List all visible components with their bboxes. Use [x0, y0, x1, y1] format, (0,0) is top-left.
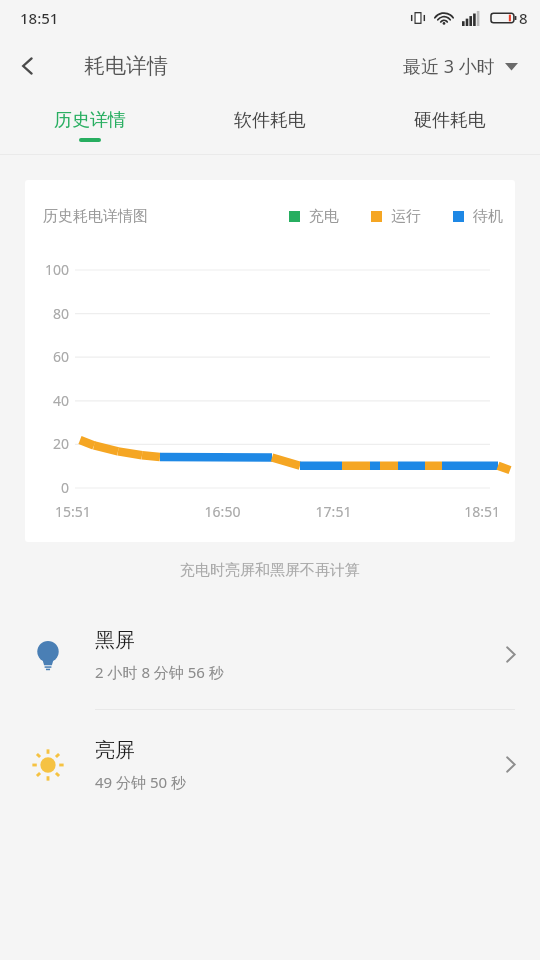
- button[interactable]: Back: [0, 38, 56, 94]
- staticText: 40: [25, 391, 69, 410]
- staticText: 15:51: [55, 502, 167, 521]
- staticText: 49 分钟 50 秒: [95, 772, 187, 792]
- button[interactable]: 黑屏: [0, 600, 540, 709]
- staticText: 80: [25, 304, 69, 323]
- staticText: 17:51: [278, 502, 389, 521]
- staticText: 亮屏: [95, 738, 135, 763]
- staticText: 16:50: [167, 502, 278, 521]
- staticText: 100: [25, 260, 69, 279]
- staticText: 历史详情: [54, 109, 126, 132]
- staticText: 耗电详情: [84, 53, 168, 79]
- staticText: 充电时亮屏和黑屏不再计算: [0, 561, 540, 580]
- staticText: 待机: [473, 207, 503, 226]
- staticText: 60: [25, 347, 69, 366]
- button[interactable]: 硬件耗电: [360, 96, 540, 154]
- staticText: 0: [25, 478, 69, 497]
- staticText: 硬件耗电: [414, 109, 486, 132]
- button[interactable]: 软件耗电: [180, 96, 360, 154]
- staticText: 运行: [391, 207, 421, 226]
- button[interactable]: 最近 3 小时: [399, 48, 522, 85]
- button[interactable]: 历史详情: [0, 96, 180, 154]
- staticText: 充电: [309, 207, 339, 226]
- staticText: 2 小时 8 分钟 56 秒: [95, 662, 224, 682]
- staticText: 最近 3 小时: [403, 54, 495, 79]
- staticText: 黑屏: [95, 628, 135, 653]
- staticText: 18:51: [389, 502, 500, 521]
- staticText: 历史耗电详情图: [43, 207, 148, 226]
- staticText: 18:51: [20, 8, 59, 28]
- staticText: 8: [519, 8, 528, 28]
- button[interactable]: 亮屏: [0, 710, 540, 819]
- staticText: 软件耗电: [234, 109, 306, 132]
- staticText: 20: [25, 434, 69, 453]
